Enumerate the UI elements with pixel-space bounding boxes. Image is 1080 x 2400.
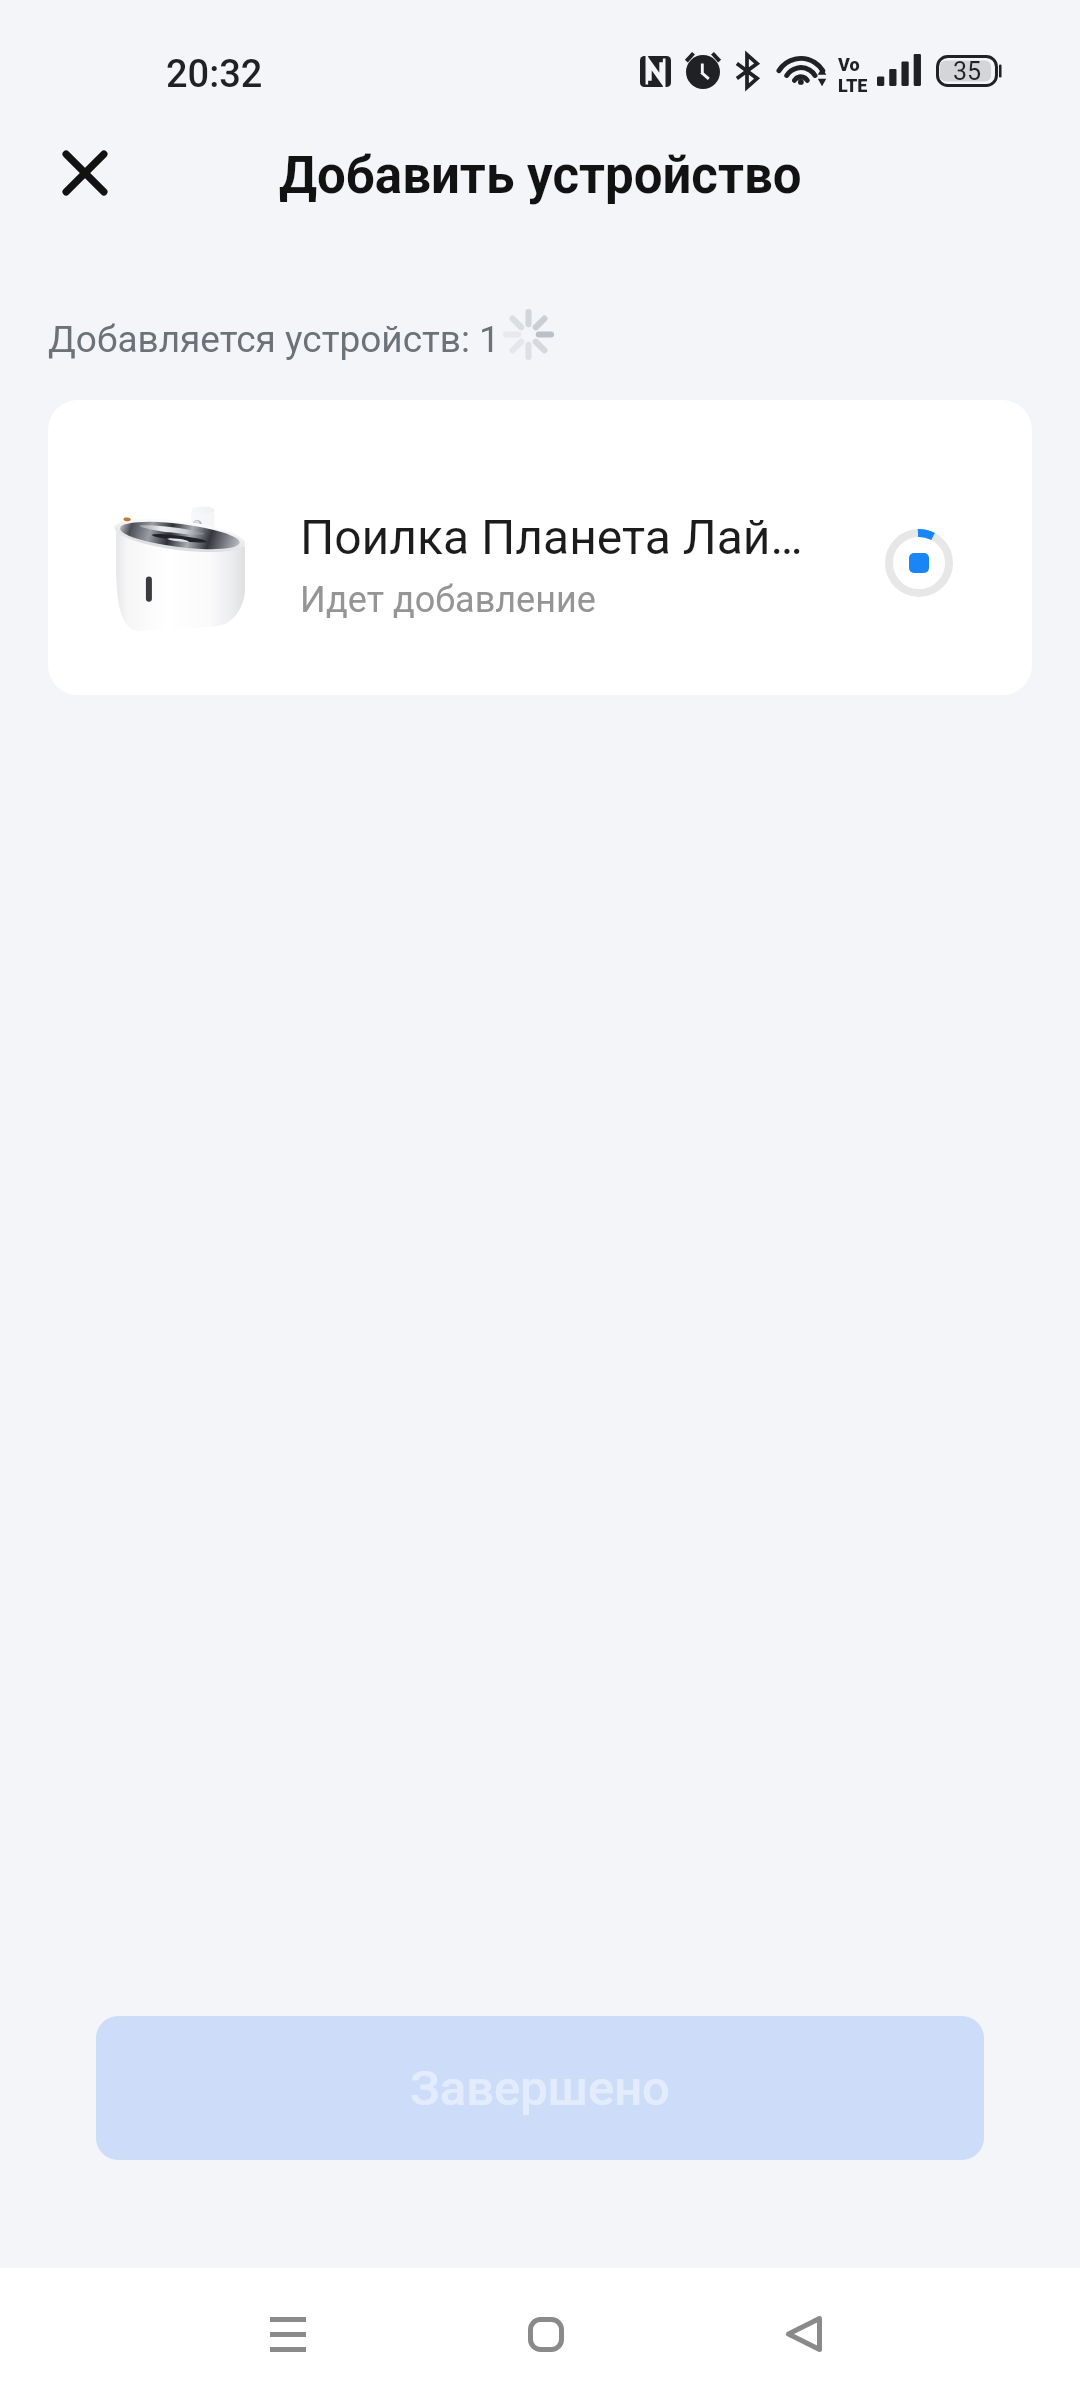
staticText: Поилка Планета Лай… [300, 509, 803, 565]
staticText: 35 [953, 57, 982, 86]
staticText: LTE [838, 75, 868, 96]
button[interactable]: Stop adding device [885, 529, 953, 597]
button[interactable]: Home [482, 2288, 610, 2380]
button[interactable]: Back [740, 2288, 868, 2380]
staticText: Добавляется устройств: 1 [48, 318, 500, 361]
staticText: Завершено [410, 2060, 670, 2117]
button[interactable]: Завершено [96, 2016, 984, 2160]
staticText: 20:32 [166, 52, 263, 97]
button[interactable]: Поилка Планета Лай… [48, 400, 1032, 695]
staticText: Идет добавление [300, 579, 596, 621]
staticText: Vo [838, 54, 860, 75]
button[interactable]: Recent apps [224, 2288, 352, 2380]
button[interactable]: Close [40, 128, 130, 218]
staticText: Добавить устройство [279, 146, 802, 206]
